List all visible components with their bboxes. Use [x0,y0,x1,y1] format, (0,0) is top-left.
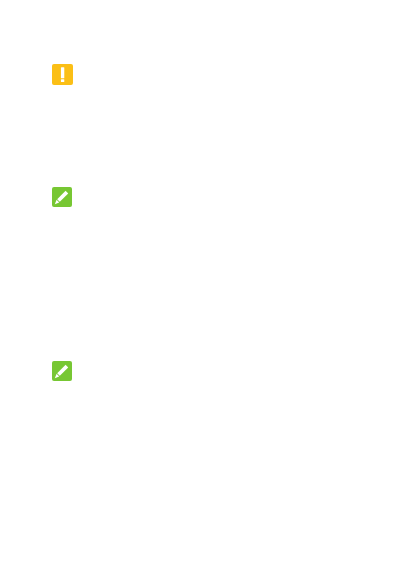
button[interactable]: Edit entry [0,147,397,321]
button[interactable]: Warning notice [0,0,397,147]
button[interactable]: Edit entry [0,321,397,527]
